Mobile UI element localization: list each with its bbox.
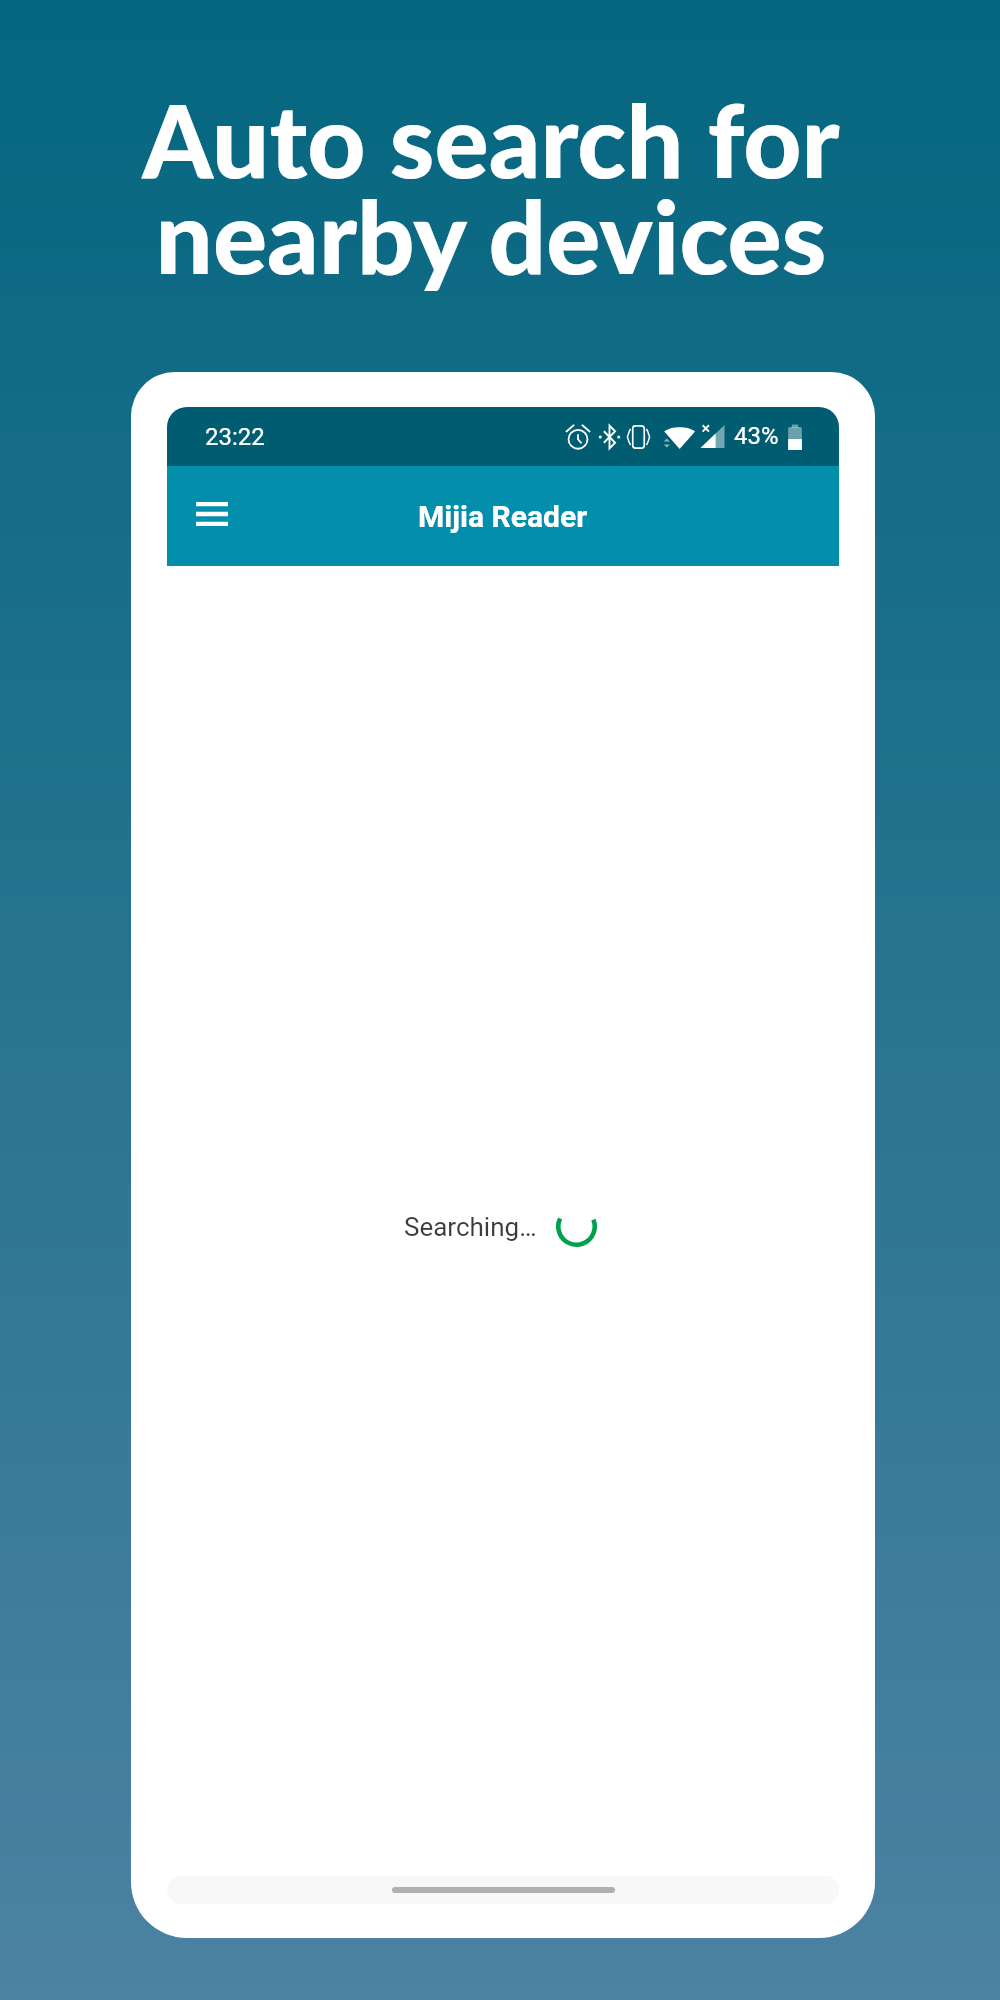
staticText: 43% — [734, 422, 779, 450]
staticText: Auto search for nearby devices — [0, 78, 991, 295]
staticText: Mijia Reader — [418, 499, 588, 534]
staticText: 23:22 — [205, 423, 265, 451]
staticText: Searching… — [404, 1212, 537, 1242]
other: Alarm set, Bluetooth on, Vibrate, Wi-Fi … — [167, 407, 839, 466]
button[interactable]: Open navigation menu — [179, 481, 245, 547]
